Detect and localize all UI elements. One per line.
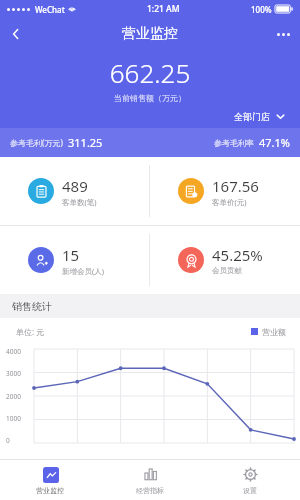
staticText: 15: [62, 245, 80, 265]
staticText: 45.25%: [212, 245, 263, 265]
staticText: 营业监控: [36, 486, 64, 495]
staticText: 311.25: [68, 135, 103, 150]
staticText: 100%: [251, 4, 272, 15]
button[interactable]: 15: [0, 226, 149, 294]
button[interactable]: Back: [0, 18, 32, 50]
staticText: 经营指标: [136, 486, 164, 495]
button[interactable]: 45.25%: [150, 226, 300, 294]
staticText: 2000: [6, 392, 21, 401]
staticText: 489: [62, 176, 88, 196]
staticText: 销售统计: [12, 300, 52, 313]
button[interactable]: 设置: [200, 460, 300, 500]
staticText: 新增会员(人): [62, 266, 104, 276]
button[interactable]: More options: [266, 18, 300, 50]
staticText: 会员贡献: [212, 266, 242, 275]
staticText: 47.1%: [259, 135, 290, 150]
staticText: 客单数(笔): [62, 197, 97, 207]
button[interactable]: 489: [0, 157, 149, 225]
staticText: 1:21 AM: [147, 3, 180, 15]
button[interactable]: 营业监控: [0, 460, 100, 500]
button[interactable]: 全部门店: [230, 109, 290, 124]
staticText: 客单价(元): [212, 197, 247, 207]
staticText: 单位: 元: [16, 326, 45, 337]
button[interactable]: 167.56: [150, 157, 300, 225]
staticText: 营业额: [262, 327, 286, 337]
staticText: 参考毛利(万元): [10, 137, 63, 148]
staticText: 全部门店: [234, 111, 270, 122]
staticText: 1000: [6, 414, 21, 423]
staticText: 0: [6, 436, 10, 445]
staticText: 参考毛利率: [214, 138, 254, 148]
staticText: 662.25: [0, 55, 300, 90]
staticText: 3000: [6, 369, 21, 378]
staticText: WeChat: [35, 4, 65, 15]
button[interactable]: 经营指标: [100, 460, 200, 500]
staticText: 当前销售额（万元）: [0, 93, 300, 103]
staticText: 设置: [243, 486, 257, 495]
staticText: 营业监控: [122, 25, 178, 43]
staticText: 4000: [6, 347, 21, 356]
staticText: 167.56: [212, 176, 259, 196]
